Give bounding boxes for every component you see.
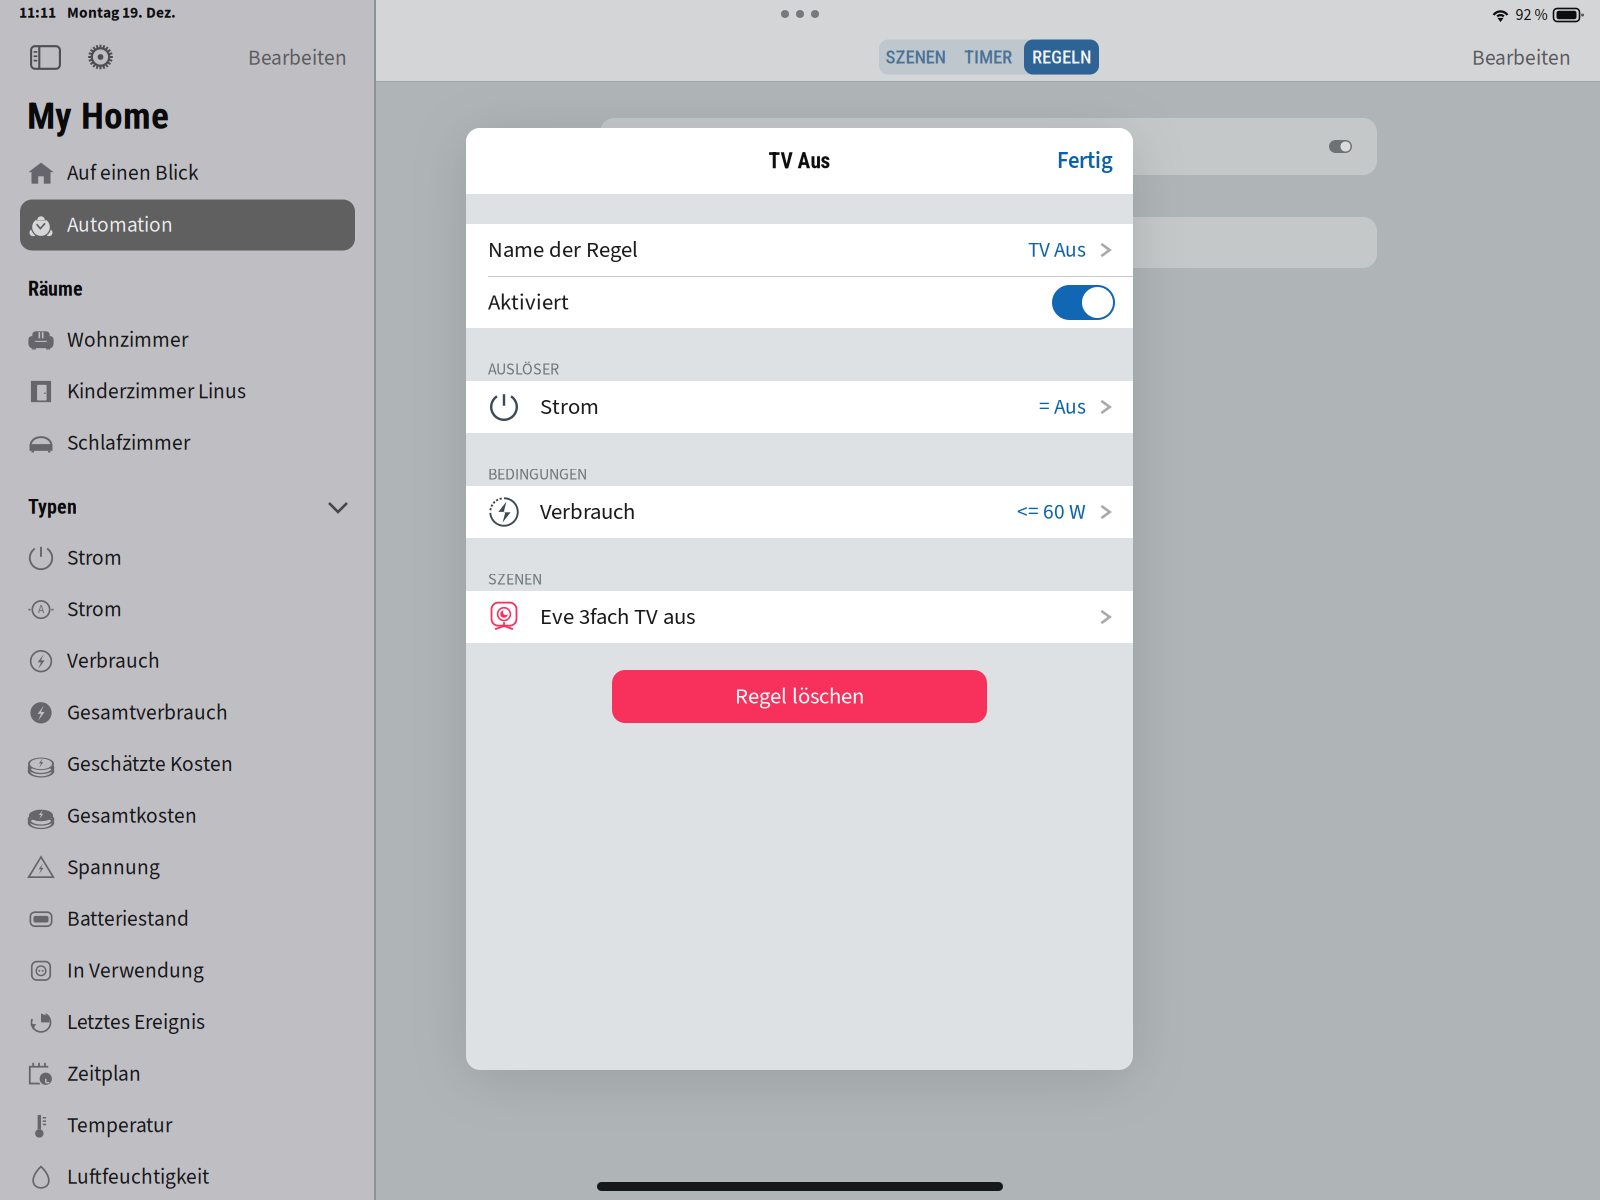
staticText: TIMER (964, 46, 1012, 68)
staticText: TV Aus (768, 148, 830, 173)
staticText: Auf einen Blick (67, 158, 199, 188)
staticText: Gesamtverbrauch (67, 698, 228, 728)
staticText: = Aus (1039, 392, 1086, 422)
staticText: Strom (540, 391, 599, 423)
staticText: Verbrauch (67, 646, 160, 676)
button[interactable]: REGELN (1024, 39, 1099, 74)
button[interactable]: Letztes Ereignis (20, 997, 355, 1048)
button[interactable]: A (20, 584, 355, 635)
staticText: 11:11 (19, 2, 56, 24)
button[interactable]: Verbrauch (466, 486, 1133, 538)
staticText: SZENEN (885, 46, 945, 68)
staticText: Luftfeuchtigkeit (67, 1162, 209, 1192)
button[interactable]: Kinderzimmer Linus (20, 366, 355, 417)
button[interactable]: Automation (20, 199, 355, 250)
button[interactable]: Typen ausklappen (315, 487, 361, 527)
button[interactable]: Zeitplan (20, 1048, 355, 1099)
button[interactable]: Einstellungen (75, 34, 125, 80)
button[interactable]: Auf einen Blick (20, 147, 355, 198)
staticText: Verbrauch (540, 496, 635, 528)
button[interactable]: Strom (20, 532, 355, 583)
button[interactable]: Spannung (20, 842, 355, 893)
button[interactable]: Strom (466, 381, 1133, 433)
staticText: Name der Regel (488, 234, 638, 266)
button[interactable]: Geschätzte Kosten (20, 739, 355, 790)
staticText: Spannung (67, 852, 160, 883)
staticText: Strom (67, 543, 122, 573)
button[interactable]: Fertig (1037, 128, 1133, 194)
button[interactable]: Temperatur (20, 1100, 355, 1151)
staticText: Batteriestand (67, 904, 189, 934)
button[interactable]: Aktiviert (466, 277, 1133, 328)
staticText: Zeitplan (67, 1059, 141, 1089)
staticText: Montag 19. Dez. (67, 2, 176, 24)
staticText: Geschätzte Kosten (67, 749, 233, 780)
button[interactable]: Regel löschen (612, 670, 987, 723)
staticText: BEDINGUNGEN (488, 463, 587, 486)
button[interactable]: TIMER (952, 39, 1024, 74)
staticText: Räume (28, 277, 83, 301)
staticText: In Verwendung (67, 956, 204, 986)
button[interactable]: Schlafzimmer (20, 417, 355, 468)
staticText: AUSLÖSER (488, 358, 559, 381)
button[interactable]: Luftfeuchtigkeit (20, 1152, 355, 1200)
staticText: 92 % (1515, 4, 1547, 26)
button[interactable]: Eve 3fach TV aus (466, 591, 1133, 643)
staticText: Bearbeiten (248, 43, 347, 73)
staticText: Fertig (1057, 145, 1113, 177)
staticText: REGELN (1032, 46, 1091, 68)
staticText: A (38, 602, 44, 617)
button[interactable]: Batteriestand (20, 894, 355, 945)
button[interactable]: Gesamtverbrauch (20, 687, 355, 738)
staticText: Eve 3fach TV aus (540, 601, 695, 633)
staticText: Automation (67, 210, 173, 240)
staticText: TV Aus (1028, 235, 1086, 265)
staticText: <= 60 W (1017, 497, 1086, 527)
button[interactable]: In Verwendung (20, 945, 355, 996)
staticText: Aktiviert (488, 286, 569, 319)
staticText: Strom (67, 594, 122, 625)
staticText: SZENEN (488, 568, 542, 591)
button[interactable]: Gesamtkosten (20, 790, 355, 841)
button[interactable]: Bearbeiten (1411, 36, 1571, 80)
staticText: Typen (28, 495, 77, 519)
button[interactable]: SZENEN (879, 39, 952, 74)
staticText: Letztes Ereignis (67, 1007, 205, 1038)
staticText: Regel löschen (735, 680, 864, 713)
staticText: Temperatur (67, 1110, 172, 1141)
button[interactable]: Wohnzimmer (20, 314, 355, 365)
staticText: Schlafzimmer (67, 428, 190, 458)
staticText: My Home (27, 94, 169, 138)
button[interactable]: Seitenleiste (20, 34, 70, 80)
staticText: Gesamtkosten (67, 801, 197, 831)
staticText: Kinderzimmer Linus (67, 376, 246, 407)
button[interactable]: Bearbeiten (187, 35, 347, 81)
staticText: Bearbeiten (1472, 43, 1571, 73)
button[interactable]: Verbrauch (20, 636, 355, 687)
button[interactable]: Name der Regel (466, 224, 1133, 276)
staticText: Wohnzimmer (67, 325, 188, 355)
